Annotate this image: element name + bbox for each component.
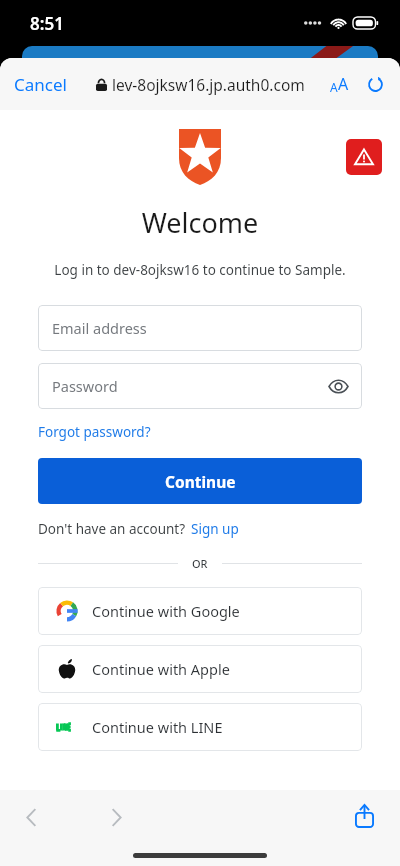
button[interactable]: Forgot password? (38, 423, 151, 441)
staticText: Password (52, 376, 118, 396)
button[interactable]: Back (20, 802, 43, 833)
staticText: A (330, 79, 338, 95)
staticText: Continue (165, 471, 236, 492)
staticText: Continue with Apple (92, 659, 230, 679)
button[interactable]: Text size (326, 69, 353, 99)
button[interactable]: Continue with LINE (38, 703, 362, 751)
staticText: Log in to dev-8ojksw16 to continue to Sa… (0, 261, 400, 279)
button[interactable]: Password (38, 363, 362, 409)
button[interactable]: Continue with Apple (38, 645, 362, 693)
button[interactable]: Reload (363, 72, 388, 97)
button[interactable]: Sign up (191, 520, 239, 538)
staticText: A (338, 73, 349, 95)
button[interactable]: Continue with Google (38, 587, 362, 635)
staticText: Email address (52, 318, 147, 338)
staticText: Continue with LINE (92, 717, 223, 737)
staticText: Continue with Google (92, 601, 240, 621)
staticText: 8:51 (30, 12, 64, 35)
staticText: Welcome (0, 204, 400, 241)
staticText: lev-8ojksw16.jp.auth0.com (112, 74, 305, 95)
button[interactable]: Continue (38, 458, 362, 504)
button[interactable]: Share (351, 800, 378, 832)
button[interactable]: Email address (38, 305, 362, 351)
button[interactable]: Cancel (0, 65, 75, 104)
staticText: Don't have an account? (38, 520, 186, 538)
staticText: OR (192, 556, 208, 571)
button[interactable]: Error (346, 139, 382, 175)
button[interactable]: Forward (105, 802, 128, 833)
